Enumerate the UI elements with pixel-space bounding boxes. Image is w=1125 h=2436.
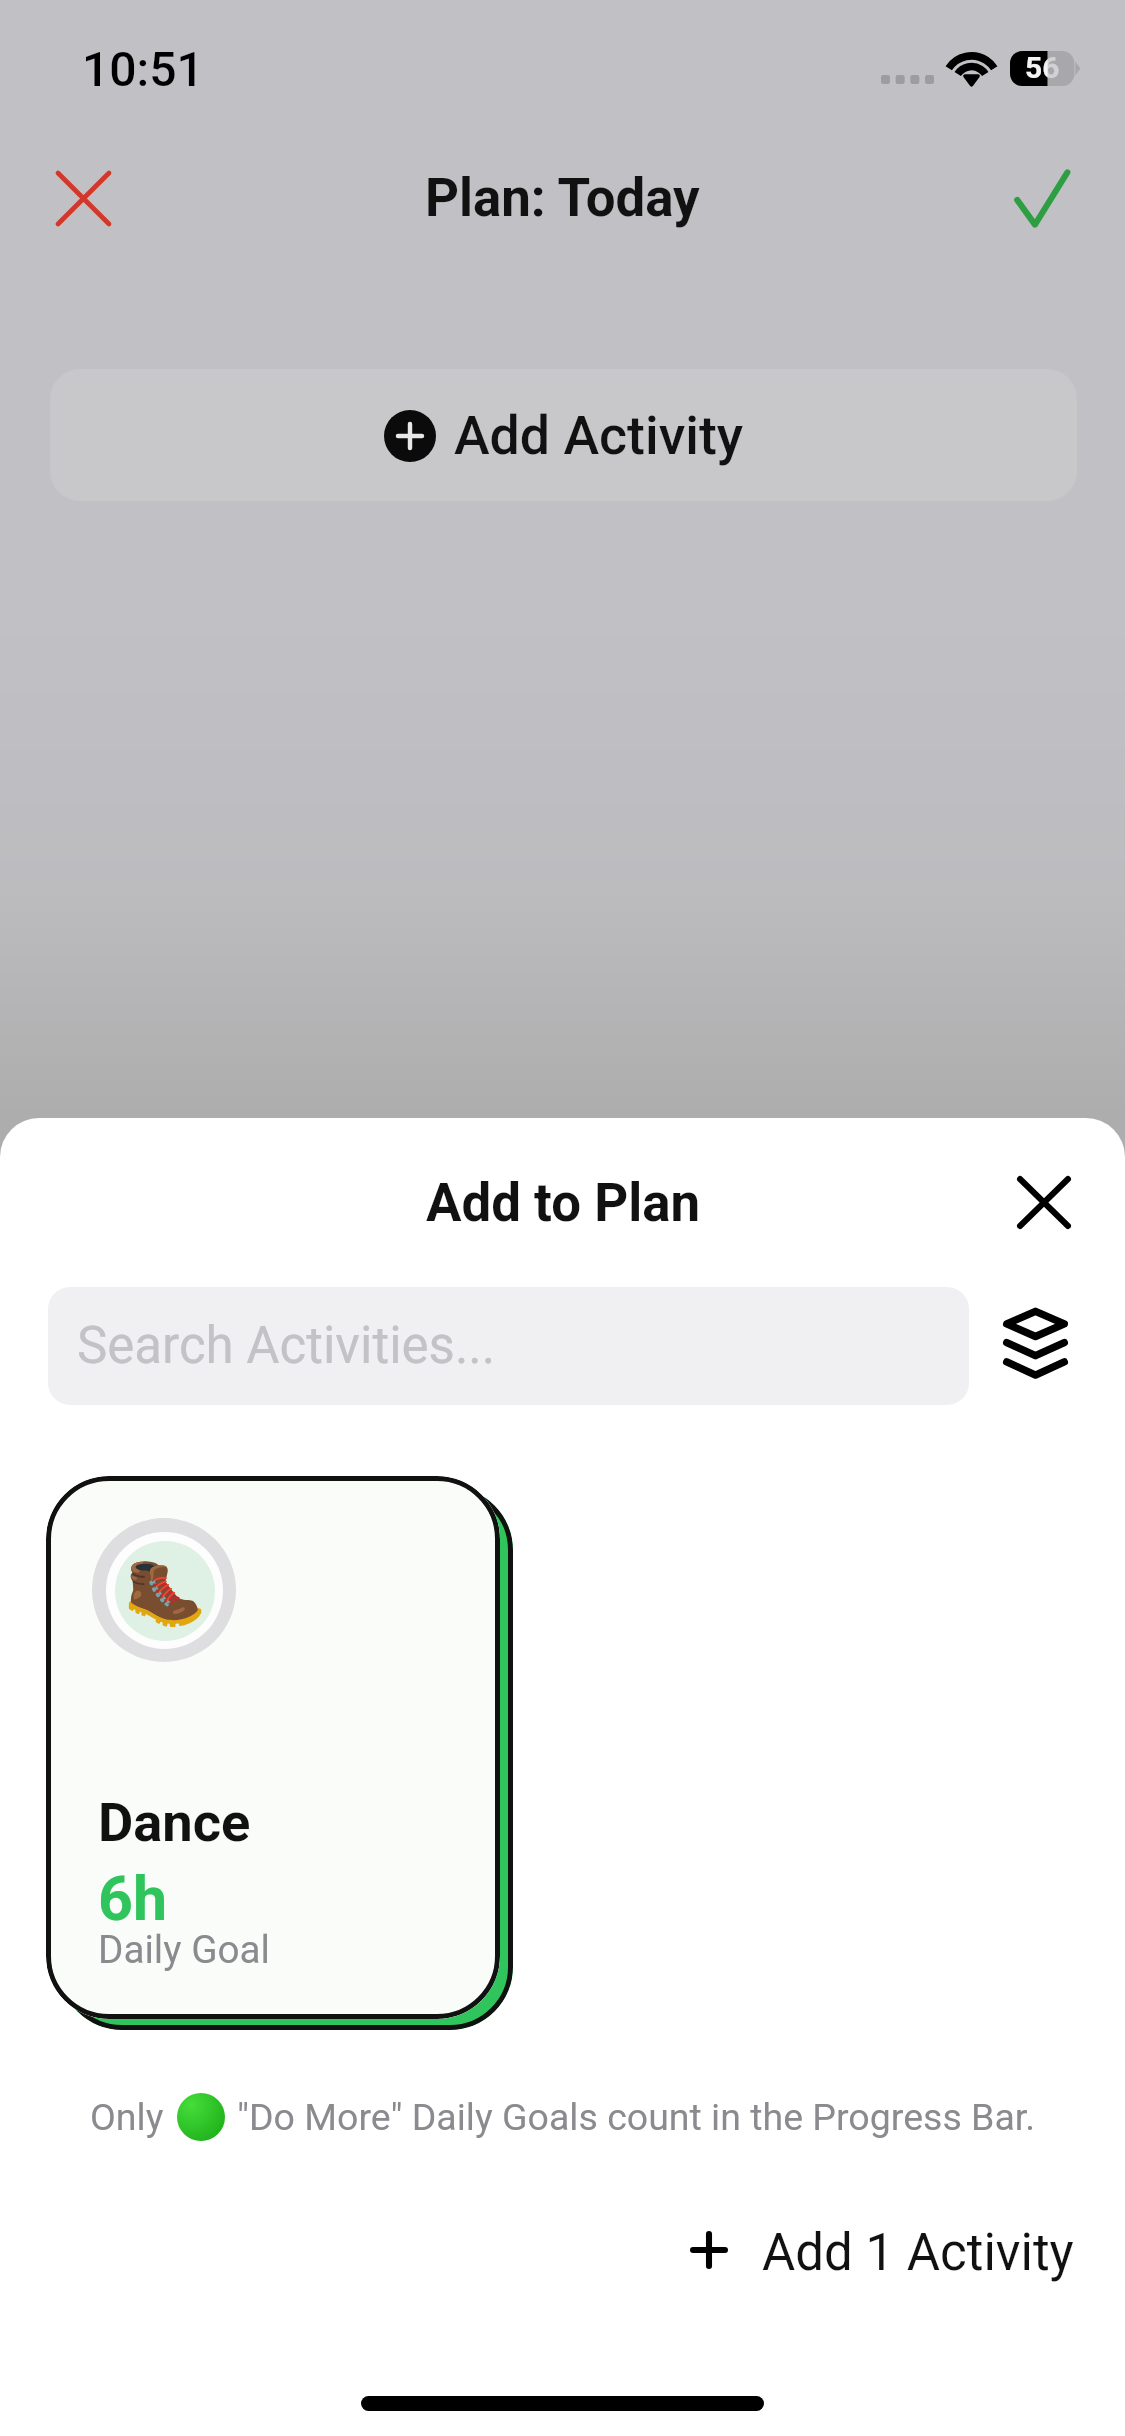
staticText: Add to Plan <box>426 1172 700 1234</box>
staticText: Plan: Today <box>425 167 700 229</box>
button[interactable]: Done <box>995 152 1088 245</box>
button[interactable]: 🥾 <box>46 1476 500 2019</box>
staticText: Add Activity <box>454 404 744 467</box>
button[interactable]: Add Activity <box>50 369 1077 501</box>
staticText: Search Activities... <box>77 1316 496 1376</box>
staticText: Daily Goal <box>98 1927 271 1972</box>
button[interactable]: Add 1 Activity <box>678 2196 1086 2310</box>
button[interactable]: Cancel <box>37 152 130 245</box>
button[interactable]: Layers <box>978 1286 1092 1400</box>
staticText: Dance <box>98 1791 251 1855</box>
staticText: 56 <box>1025 50 1060 85</box>
button[interactable]: Close <box>993 1151 1095 1253</box>
staticText: 6h <box>98 1864 168 1935</box>
staticText: Only <box>90 2095 164 2139</box>
staticText: Add 1 Activity <box>762 2223 1074 2283</box>
staticText: 10:51 <box>82 41 204 97</box>
button[interactable]: Search Activities... <box>48 1287 969 1405</box>
staticText: "Do More" Daily Goals count in the Progr… <box>237 2095 1036 2139</box>
staticText: 🥾 <box>124 1553 207 1630</box>
